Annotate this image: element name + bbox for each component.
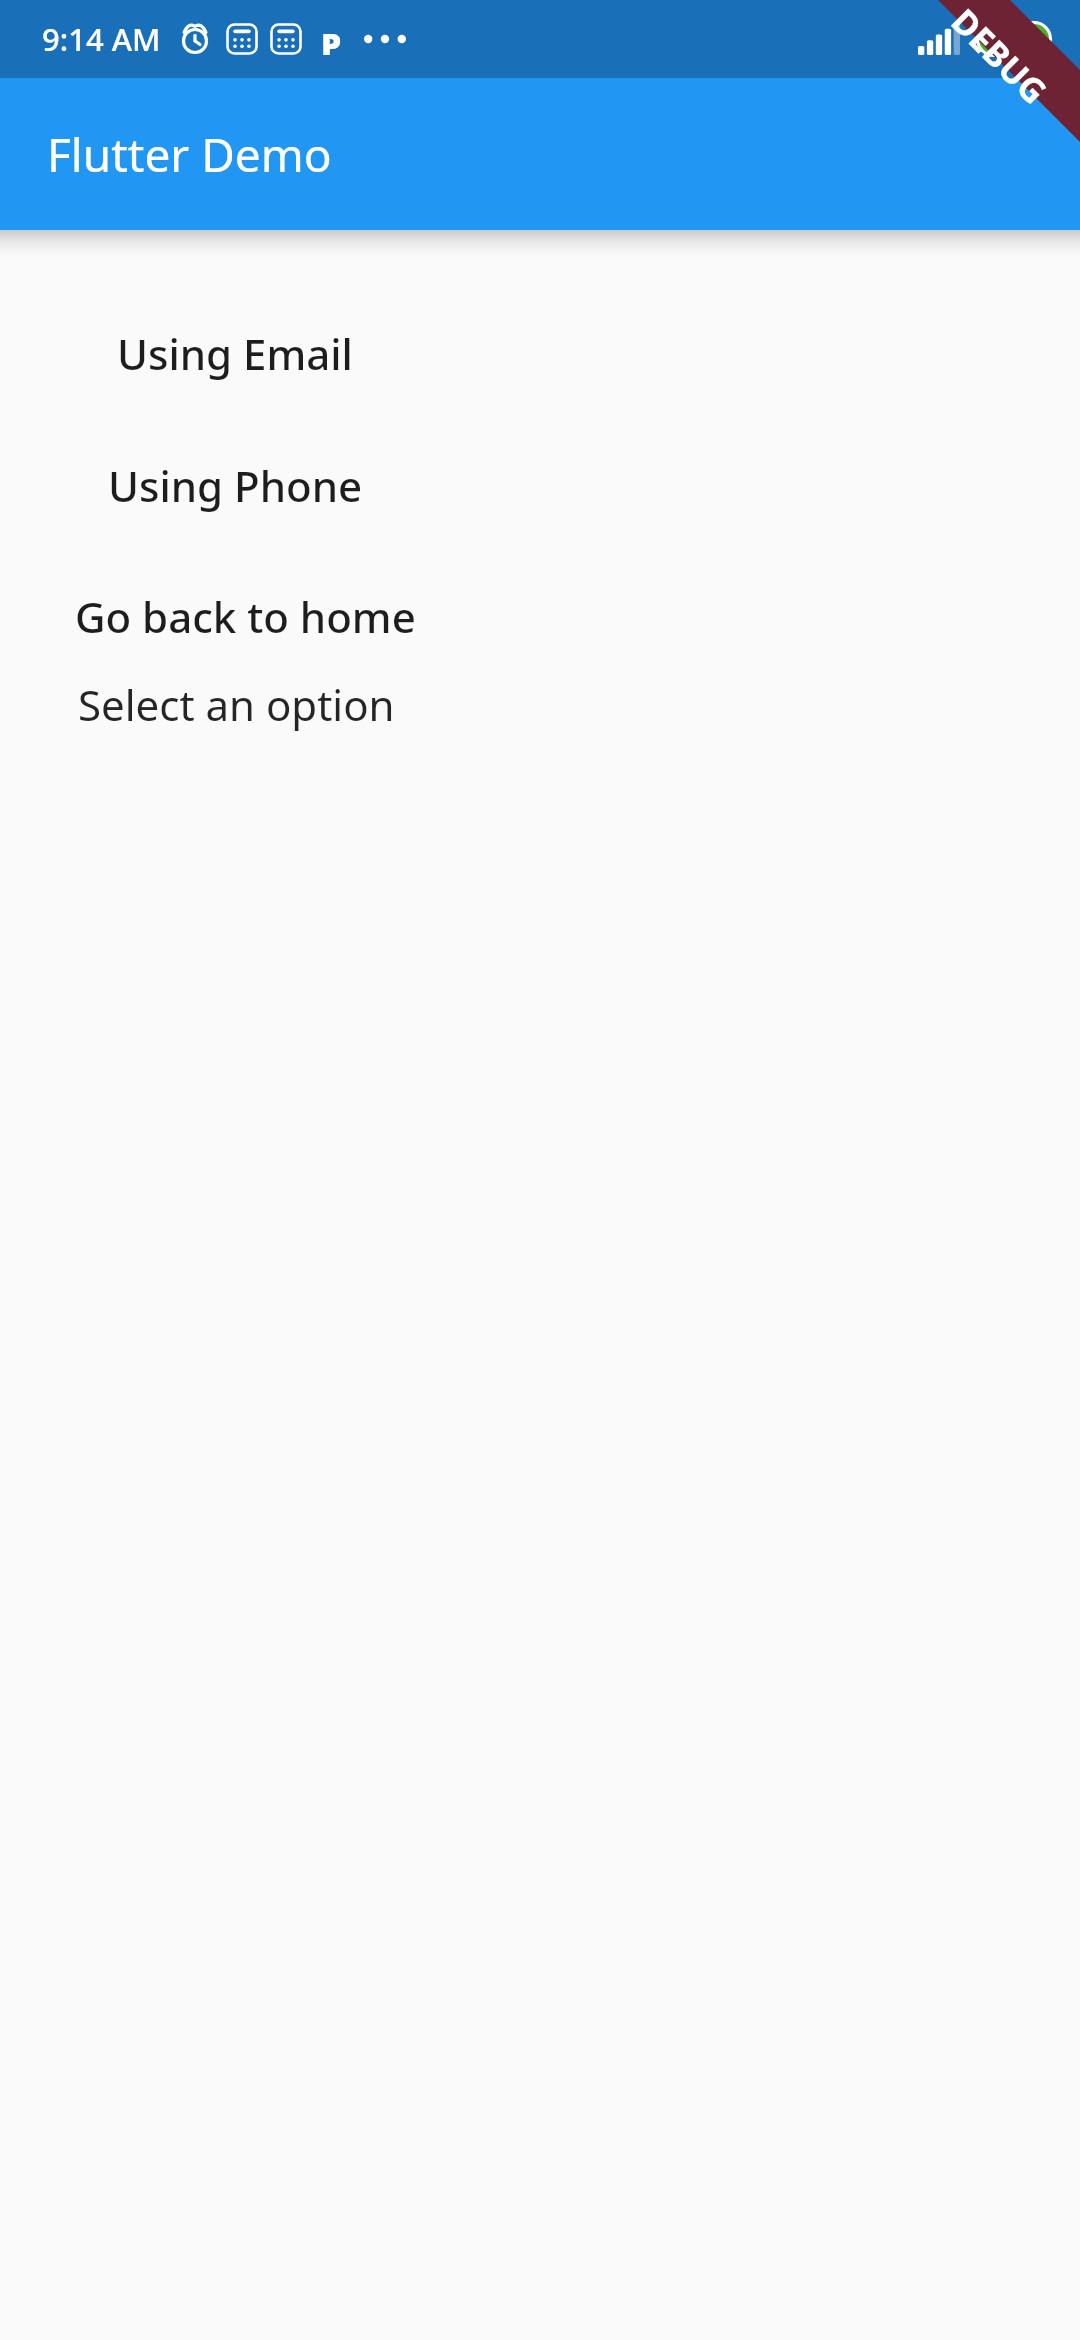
button[interactable]: Using Email xyxy=(0,309,1080,397)
staticText: 100 xyxy=(993,24,1036,54)
staticText: P xyxy=(321,23,342,55)
staticText: 9:14 AM xyxy=(42,18,161,60)
button[interactable]: Select an option xyxy=(0,660,1080,748)
staticText: Go back to home xyxy=(75,588,416,645)
staticText: Flutter Demo xyxy=(47,123,332,186)
button[interactable]: Go back to home xyxy=(0,572,1080,660)
button[interactable]: Using Phone xyxy=(0,441,1080,529)
staticText: Using Email xyxy=(117,325,353,382)
staticText: Select an option xyxy=(78,676,395,733)
staticText: DEBUG xyxy=(942,0,1057,114)
staticText: Using Phone xyxy=(108,457,363,514)
other: Debug banner xyxy=(0,0,1080,2340)
